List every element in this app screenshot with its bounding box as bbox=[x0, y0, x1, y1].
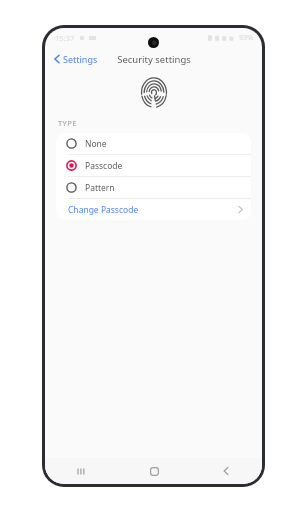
staticText: Pattern bbox=[85, 182, 115, 194]
staticText: TYPE bbox=[58, 118, 77, 128]
button[interactable]: Recent apps bbox=[45, 458, 118, 484]
button[interactable]: Back bbox=[190, 458, 262, 484]
staticText: Settings bbox=[63, 53, 98, 65]
button[interactable]: Passcode bbox=[56, 155, 251, 176]
staticText: Security settings bbox=[117, 53, 191, 66]
staticText: Passcode bbox=[85, 160, 123, 172]
staticText: None bbox=[85, 138, 107, 150]
button[interactable]: None bbox=[56, 133, 251, 154]
staticText: Change Passcode bbox=[68, 204, 139, 216]
button[interactable]: Settings bbox=[45, 50, 104, 68]
button[interactable]: Pattern bbox=[56, 177, 251, 198]
staticText: 93% bbox=[239, 33, 253, 43]
button[interactable]: Home bbox=[118, 458, 190, 484]
button[interactable]: Change Passcode bbox=[56, 199, 251, 220]
staticText: 15:37 bbox=[55, 33, 75, 43]
